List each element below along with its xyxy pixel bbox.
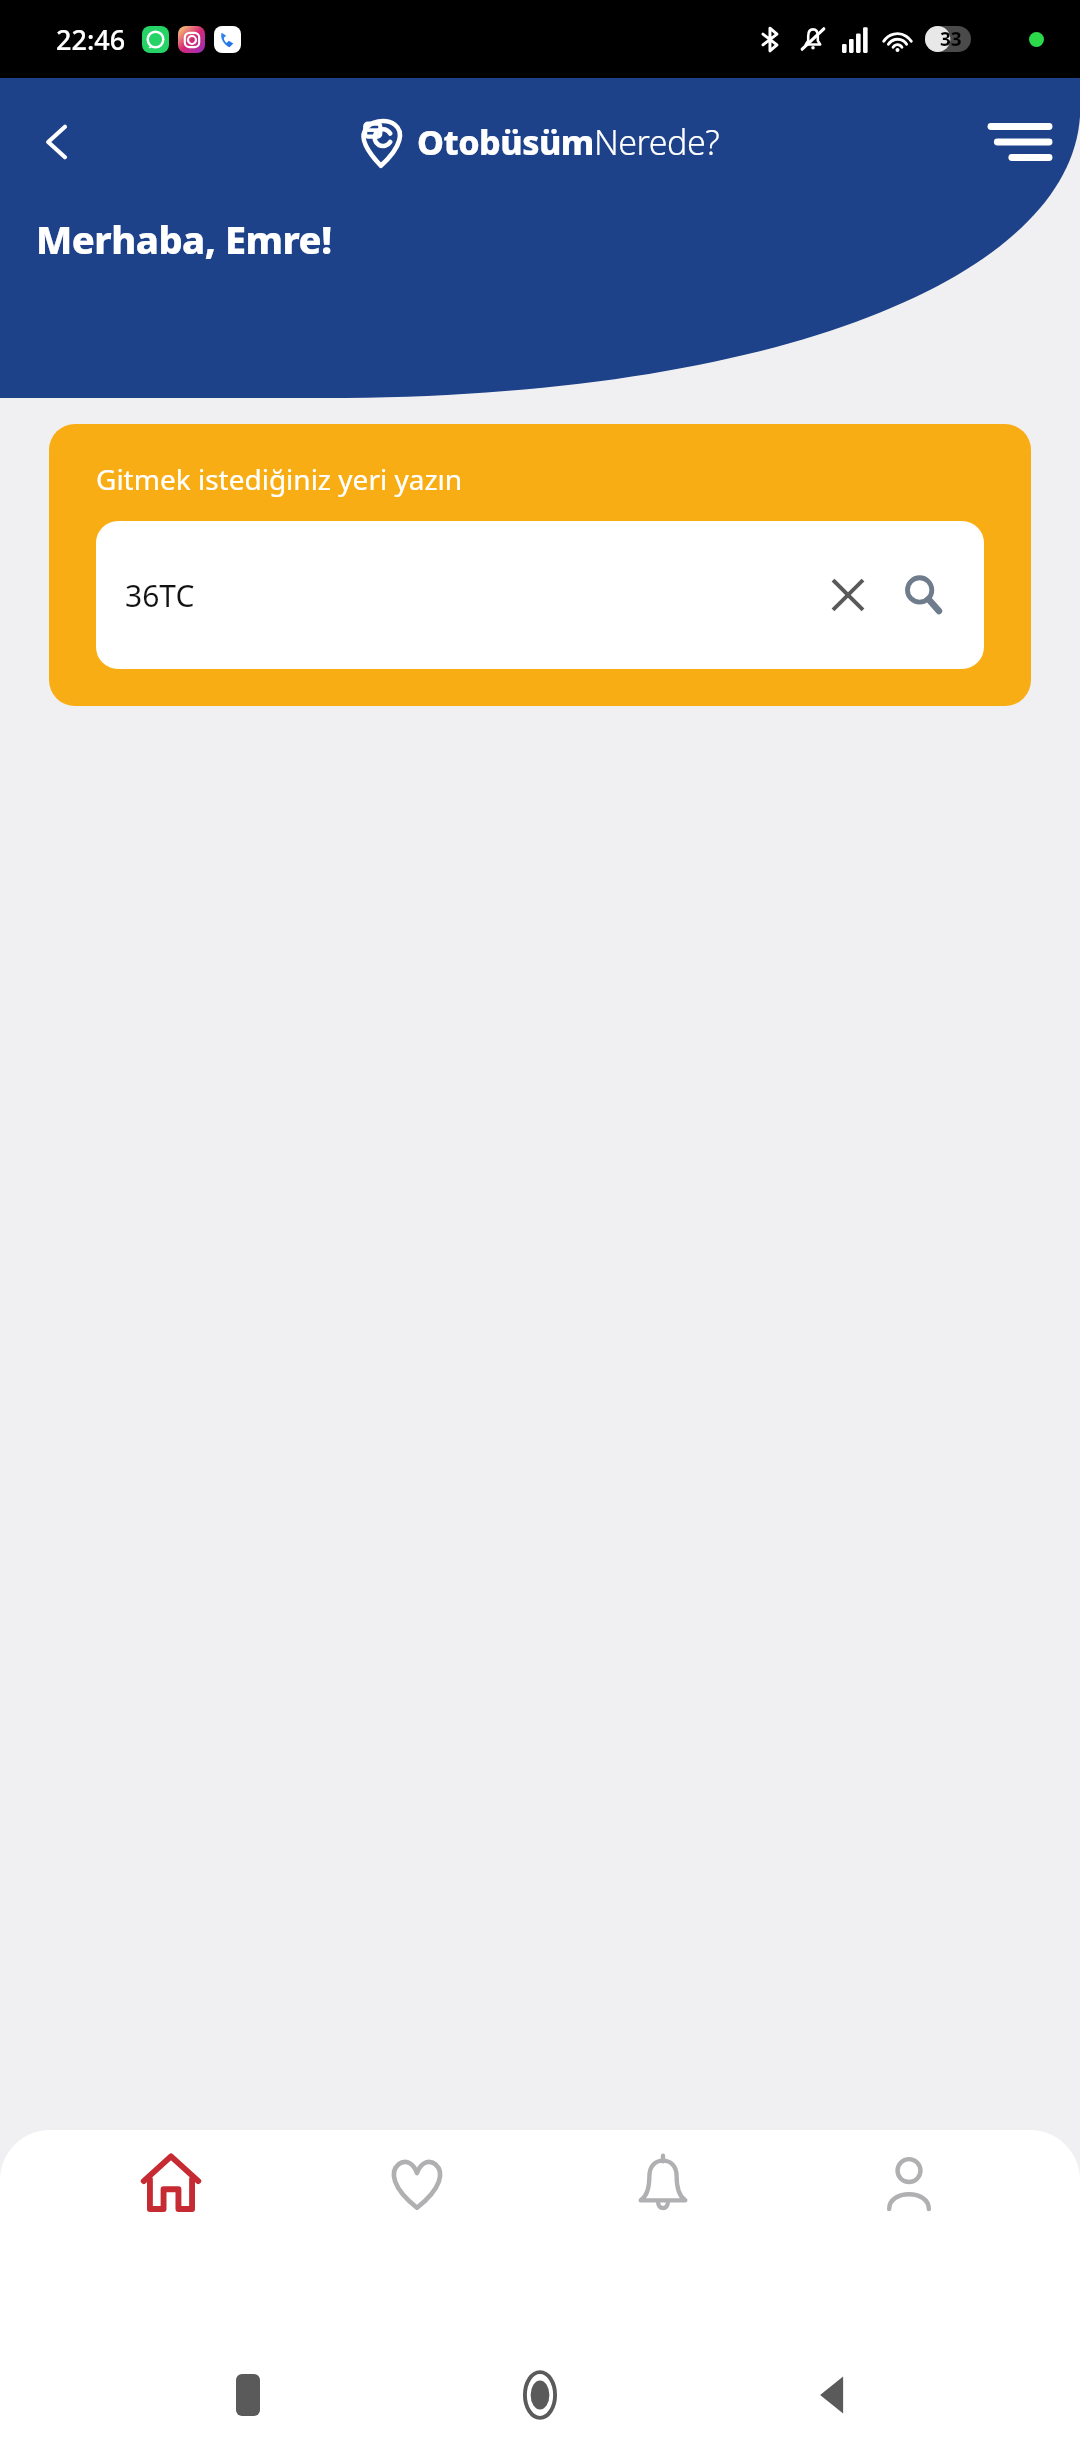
staticText: 36TC (125, 575, 195, 616)
button[interactable]: 36TC (96, 521, 984, 669)
staticText: 33 (940, 26, 962, 52)
button[interactable]: Profile (834, 2152, 984, 2262)
staticText: Gitmek istediğiniz yeri yazın (96, 460, 463, 498)
button[interactable]: Search (892, 564, 954, 626)
button[interactable]: Back (22, 107, 92, 177)
button[interactable]: Recents (203, 2350, 293, 2440)
button[interactable]: Notifications (588, 2152, 738, 2262)
staticText: Merhaba, Emre! (36, 213, 332, 265)
button[interactable]: Back (788, 2350, 878, 2440)
staticText: Nerede? (594, 119, 720, 165)
button[interactable]: Gitmek istediğiniz yeri yazın (49, 424, 1031, 706)
staticText: Otobüsüm (417, 119, 594, 165)
button[interactable]: Favorites (342, 2152, 492, 2262)
button[interactable]: Home (96, 2152, 246, 2262)
staticText: 22:46 (56, 21, 126, 58)
button[interactable]: Menu (984, 106, 1056, 178)
button[interactable]: Home (495, 2350, 585, 2440)
button[interactable]: Clear (818, 565, 878, 625)
